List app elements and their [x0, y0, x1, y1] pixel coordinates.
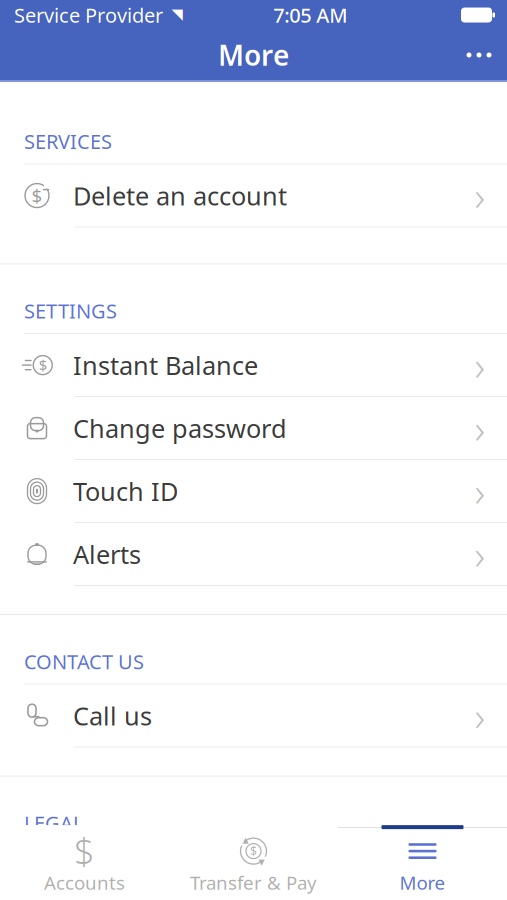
- staticText: Call us: [73, 699, 152, 732]
- staticText: CONTACT US: [24, 648, 144, 675]
- staticText: Delete an account: [73, 179, 287, 212]
- staticText: ›: [474, 402, 485, 455]
- staticText: $: [31, 183, 42, 208]
- staticText: More: [399, 870, 445, 895]
- staticText: SETTINGS: [24, 298, 117, 324]
- staticText: ›: [474, 339, 485, 392]
- staticText: More: [218, 36, 289, 74]
- button[interactable]: $: [0, 334, 507, 396]
- staticText: ›: [474, 169, 485, 222]
- staticText: ›: [474, 528, 485, 581]
- button[interactable]: Change password: [0, 397, 507, 459]
- staticText: Instant Balance: [73, 348, 258, 382]
- staticText: ▼: [258, 858, 264, 867]
- staticText: $: [74, 827, 95, 875]
- button[interactable]: Alerts: [0, 523, 507, 585]
- button[interactable]: Call us: [0, 685, 507, 747]
- staticText: LEGAL: [24, 810, 83, 836]
- staticText: ▲: [242, 836, 248, 845]
- staticText: Change password: [73, 411, 287, 445]
- staticText: SERVICES: [24, 128, 112, 155]
- button[interactable]: More: [338, 828, 507, 900]
- staticText: Alerts: [73, 537, 141, 571]
- staticText: Accounts: [44, 870, 125, 895]
- staticText: Touch ID: [73, 474, 178, 508]
- button[interactable]: More options: [451, 30, 507, 80]
- staticText: ◥: [171, 6, 182, 22]
- staticText: $: [250, 843, 257, 859]
- button[interactable]: $: [0, 165, 507, 227]
- staticText: $: [39, 355, 47, 375]
- staticText: Service Provider: [14, 2, 163, 28]
- staticText: ›: [474, 689, 485, 742]
- button[interactable]: ▲: [169, 828, 338, 900]
- staticText: ›: [474, 465, 485, 518]
- button[interactable]: $: [0, 828, 169, 900]
- staticText: Transfer & Pay: [190, 870, 317, 895]
- button[interactable]: Touch ID: [0, 460, 507, 522]
- staticText: 7:05 AM: [273, 2, 347, 28]
